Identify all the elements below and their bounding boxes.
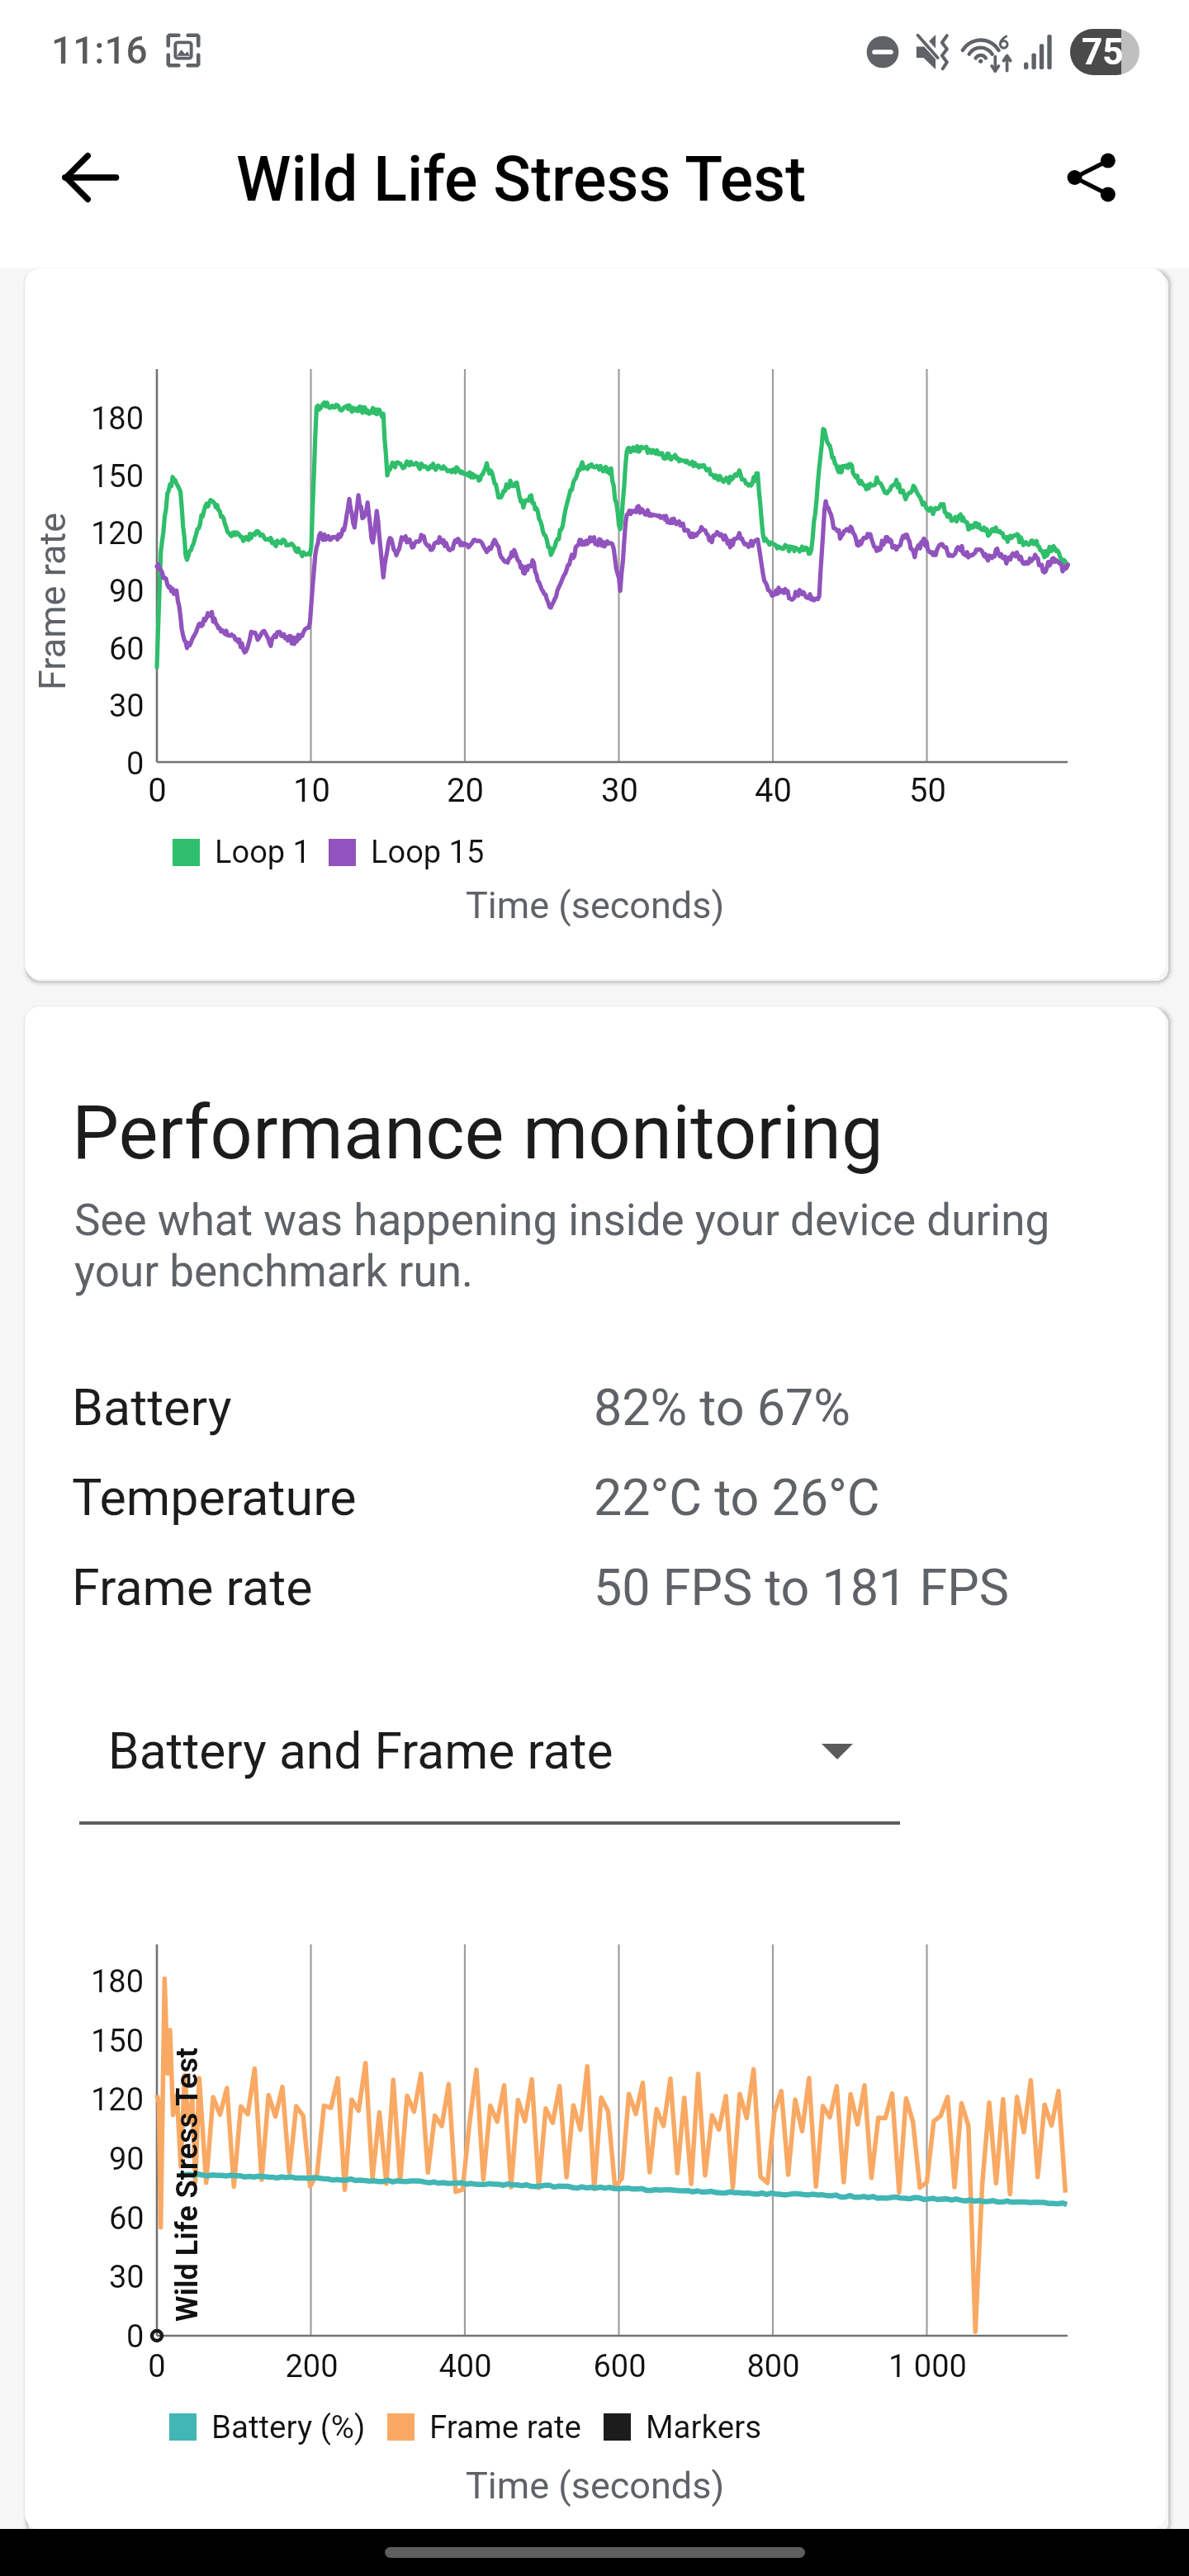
staticText: 120 bbox=[91, 515, 144, 552]
staticText: Battery (%) bbox=[211, 2408, 366, 2446]
staticText: Wild Life Stress Test bbox=[236, 143, 807, 215]
staticText: Loop 15 bbox=[371, 834, 485, 871]
staticText: Battery and Frame rate bbox=[108, 1722, 613, 1781]
button[interactable]: Back bbox=[35, 122, 145, 233]
staticText: Wild Life Stress Test bbox=[170, 2047, 205, 2322]
staticText: 150 bbox=[91, 2023, 144, 2060]
button[interactable]: Battery and Frame rate bbox=[79, 1699, 905, 1818]
staticText: 0 bbox=[148, 771, 167, 810]
staticText: 40 bbox=[755, 771, 792, 810]
staticText: 90 bbox=[109, 573, 144, 610]
staticText: Frame rate bbox=[429, 2408, 582, 2446]
staticText: Battery bbox=[72, 1378, 232, 1437]
staticText: 11:16 bbox=[51, 28, 148, 73]
staticText: Performance monitoring bbox=[72, 1089, 883, 1177]
staticText: 22°C to 26°C bbox=[594, 1468, 880, 1527]
staticText: Temperature bbox=[72, 1468, 357, 1527]
staticText: 30 bbox=[109, 688, 144, 725]
staticText: Frame rate bbox=[72, 1558, 313, 1617]
staticText: 400 bbox=[438, 2348, 492, 2385]
button[interactable]: Frame rate bbox=[58, 1542, 1148, 1632]
staticText: 20 bbox=[447, 771, 484, 810]
staticText: Loop 1 bbox=[215, 834, 310, 871]
staticText: 75 bbox=[1082, 31, 1124, 73]
button[interactable]: Temperature bbox=[58, 1452, 1148, 1542]
staticText: 60 bbox=[109, 631, 144, 668]
staticText: See what was happening inside your devic… bbox=[74, 1195, 1050, 1297]
staticText: 90 bbox=[109, 2141, 144, 2178]
button[interactable]: Battery bbox=[58, 1362, 1148, 1452]
staticText: Time (seconds) bbox=[466, 2464, 725, 2507]
staticText: 10 bbox=[293, 771, 330, 810]
staticText: 30 bbox=[109, 2259, 144, 2296]
button[interactable]: Share bbox=[1036, 122, 1147, 233]
staticText: 180 bbox=[91, 1963, 144, 2001]
staticText: Frame rate bbox=[31, 512, 74, 690]
staticText: Time (seconds) bbox=[466, 883, 725, 927]
staticText: 0 bbox=[126, 746, 144, 783]
staticText: 200 bbox=[285, 2348, 339, 2385]
staticText: 0 bbox=[126, 2318, 144, 2356]
staticText: 30 bbox=[601, 771, 638, 810]
staticText: Markers bbox=[646, 2408, 762, 2446]
staticText: 600 bbox=[593, 2348, 647, 2385]
staticText: 120 bbox=[91, 2081, 144, 2119]
staticText: 0 bbox=[148, 2348, 166, 2385]
staticText: 60 bbox=[109, 2200, 144, 2237]
staticText: 1 000 bbox=[888, 2348, 967, 2385]
staticText: 150 bbox=[91, 458, 144, 495]
staticText: 180 bbox=[91, 400, 144, 438]
staticText: 82% to 67% bbox=[594, 1378, 850, 1437]
staticText: 800 bbox=[746, 2348, 800, 2385]
staticText: 50 bbox=[909, 771, 946, 810]
staticText: 50 FPS to 181 FPS bbox=[594, 1558, 1009, 1617]
